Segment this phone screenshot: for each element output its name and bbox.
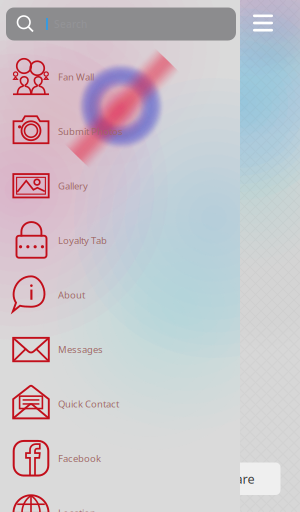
button[interactable]: Quick Contact (0, 376, 240, 431)
button[interactable]: Loyalty Tab (0, 213, 240, 267)
button[interactable]: Submit Photos (0, 104, 240, 158)
staticText: Share (220, 470, 254, 487)
button[interactable]: Facebook (0, 431, 240, 485)
button[interactable]: Search (6, 7, 236, 40)
staticText: Messages (58, 343, 103, 356)
staticText: Loyalty Tab (58, 234, 107, 247)
staticText: About (58, 288, 85, 301)
button[interactable]: Location (0, 485, 240, 512)
staticText: Fan Wall (58, 70, 94, 83)
staticText: Submit Photos (58, 125, 123, 138)
button[interactable]: About (0, 267, 240, 322)
button[interactable]: Menu (246, 6, 280, 40)
button[interactable]: Share (194, 462, 280, 495)
staticText: Location (58, 506, 96, 512)
button[interactable]: Gallery (0, 158, 240, 213)
staticText: Gallery (58, 179, 88, 192)
button[interactable]: Fan Wall (0, 49, 240, 104)
button[interactable]: Messages (0, 322, 240, 376)
staticText: Quick Contact (58, 397, 119, 410)
staticText: Facebook (58, 452, 101, 465)
